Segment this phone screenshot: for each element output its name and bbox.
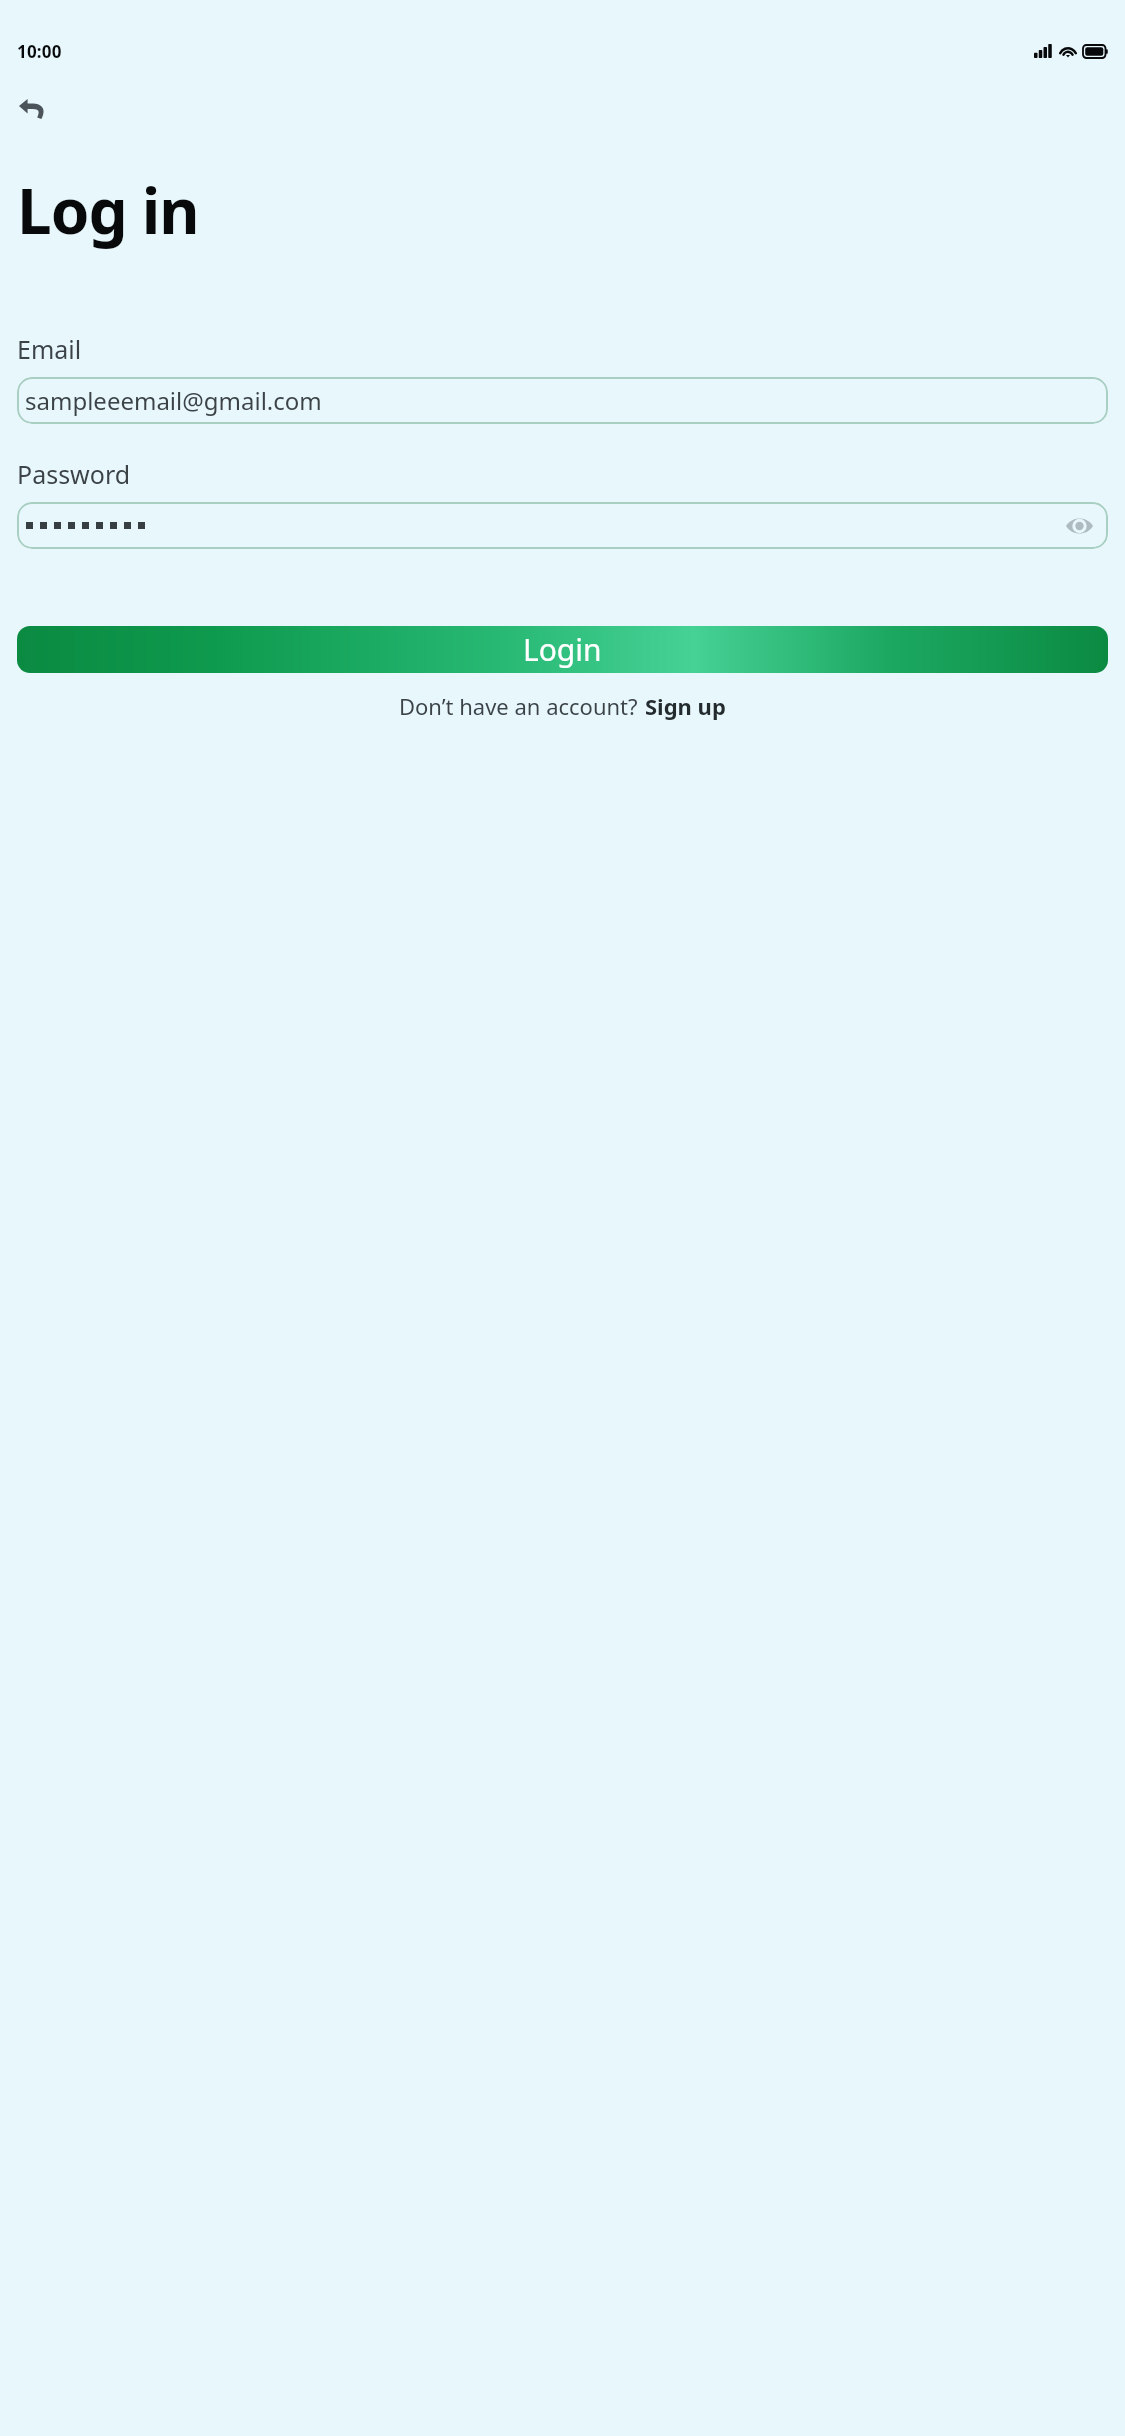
staticText: Don’t have an account? [399,691,638,721]
staticText: Login [523,629,602,670]
button[interactable]: sampleeemail@gmail.com [17,377,1108,424]
staticText: sampleeemail@gmail.com [25,384,322,417]
button[interactable]: Login [17,626,1108,673]
staticText: Log in [17,168,199,252]
staticText: Password [17,457,131,491]
button[interactable]: Show password [1062,509,1096,543]
button[interactable]: Show password [17,502,1108,549]
staticText: Sign up [645,691,726,721]
staticText: 10:00 [17,40,62,63]
button[interactable]: Sign up [645,691,726,721]
staticText: Email [17,332,82,366]
button[interactable]: Back [11,88,53,130]
